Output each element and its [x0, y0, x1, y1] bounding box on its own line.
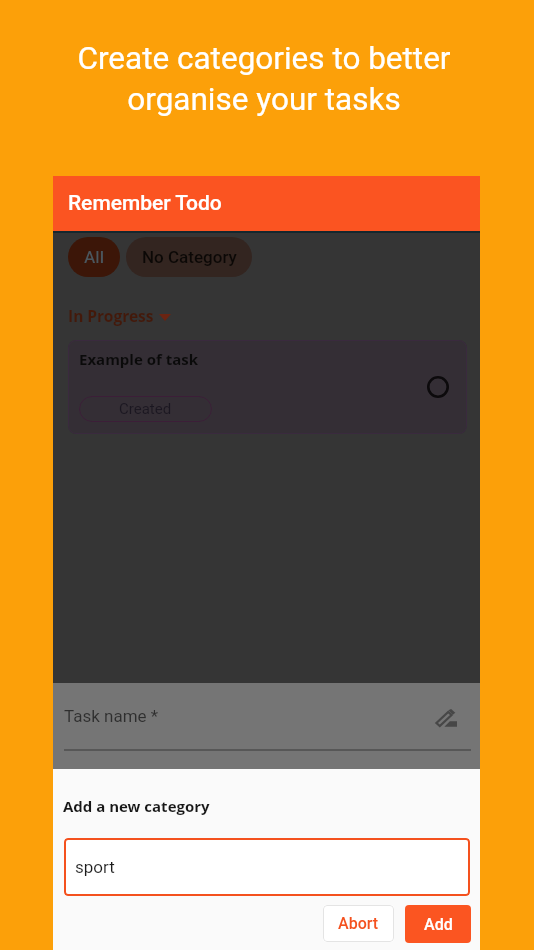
staticText: All — [84, 247, 105, 267]
staticText: No Category — [142, 247, 237, 267]
button[interactable]: Abort — [323, 905, 394, 942]
button[interactable]: Created — [79, 396, 212, 422]
button[interactable]: No Category — [126, 237, 252, 277]
staticText: Created — [119, 400, 172, 418]
staticText: Example of task — [79, 349, 199, 369]
button[interactable]: Example of task — [68, 340, 467, 434]
staticText: Abort — [338, 914, 379, 933]
button[interactable]: Add — [405, 905, 471, 943]
button[interactable]: sport — [64, 838, 470, 896]
button[interactable]: All — [68, 237, 120, 277]
staticText: Remember Todo — [68, 191, 222, 216]
staticText: sport — [75, 857, 115, 877]
staticText: Add — [424, 915, 453, 934]
staticText: Task name * — [64, 706, 159, 726]
staticText: In Progress — [68, 305, 154, 326]
other: Mark complete — [427, 376, 449, 398]
other: Edit — [436, 709, 457, 727]
button[interactable]: In Progress — [68, 305, 171, 326]
staticText: Create categories to better organise you… — [0, 40, 531, 118]
staticText: Add a new category — [63, 796, 210, 816]
